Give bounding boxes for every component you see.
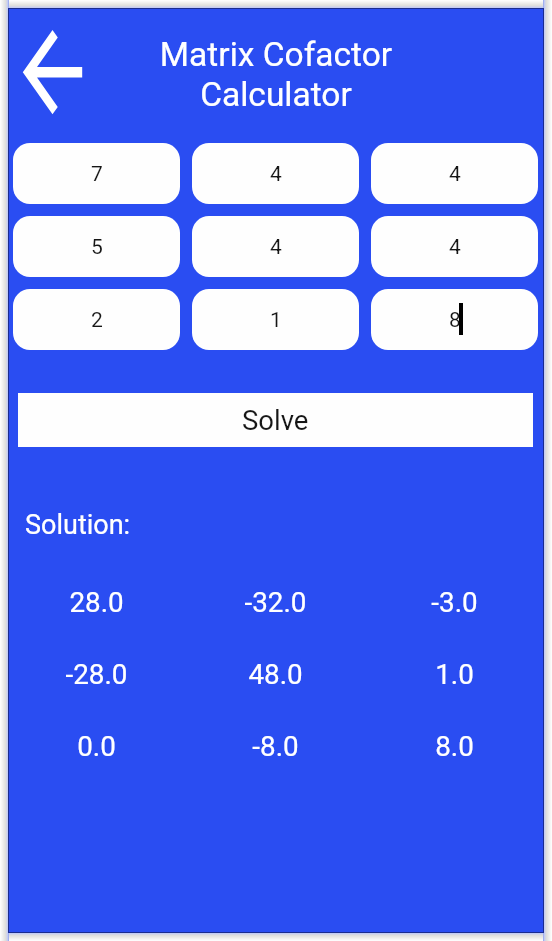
button[interactable]: 7 — [13, 143, 180, 204]
staticText: 4 — [449, 162, 461, 187]
button[interactable]: 1 — [192, 289, 359, 350]
staticText: 4 — [270, 162, 282, 187]
staticText: 1.0 — [371, 658, 538, 691]
button[interactable]: 4 — [192, 143, 359, 204]
staticText: Solution: — [25, 509, 131, 541]
staticText: Matrix Cofactor Calculator — [150, 35, 402, 114]
button[interactable]: 4 — [371, 143, 538, 204]
staticText: Solve — [242, 404, 309, 436]
button[interactable]: Navigate up — [17, 23, 93, 119]
staticText: -32.0 — [192, 586, 359, 619]
button[interactable]: 2 — [13, 289, 180, 350]
staticText: 8 — [449, 308, 461, 333]
staticText: 4 — [270, 235, 282, 260]
staticText: 4 — [449, 235, 461, 260]
staticText: 28.0 — [13, 586, 180, 619]
staticText: 48.0 — [192, 658, 359, 691]
button[interactable]: 8 — [371, 289, 538, 350]
staticText: -3.0 — [371, 586, 538, 619]
staticText: -28.0 — [13, 658, 180, 691]
button[interactable]: 4 — [371, 216, 538, 277]
button[interactable]: 4 — [192, 216, 359, 277]
staticText: 0.0 — [13, 730, 180, 763]
staticText: 7 — [91, 162, 103, 187]
button[interactable]: Solve — [18, 393, 533, 447]
staticText: 8.0 — [371, 730, 538, 763]
staticText: 2 — [91, 308, 103, 333]
staticText: 1 — [270, 308, 282, 333]
button[interactable]: 5 — [13, 216, 180, 277]
staticText: -8.0 — [192, 730, 359, 763]
staticText: 5 — [91, 235, 103, 260]
